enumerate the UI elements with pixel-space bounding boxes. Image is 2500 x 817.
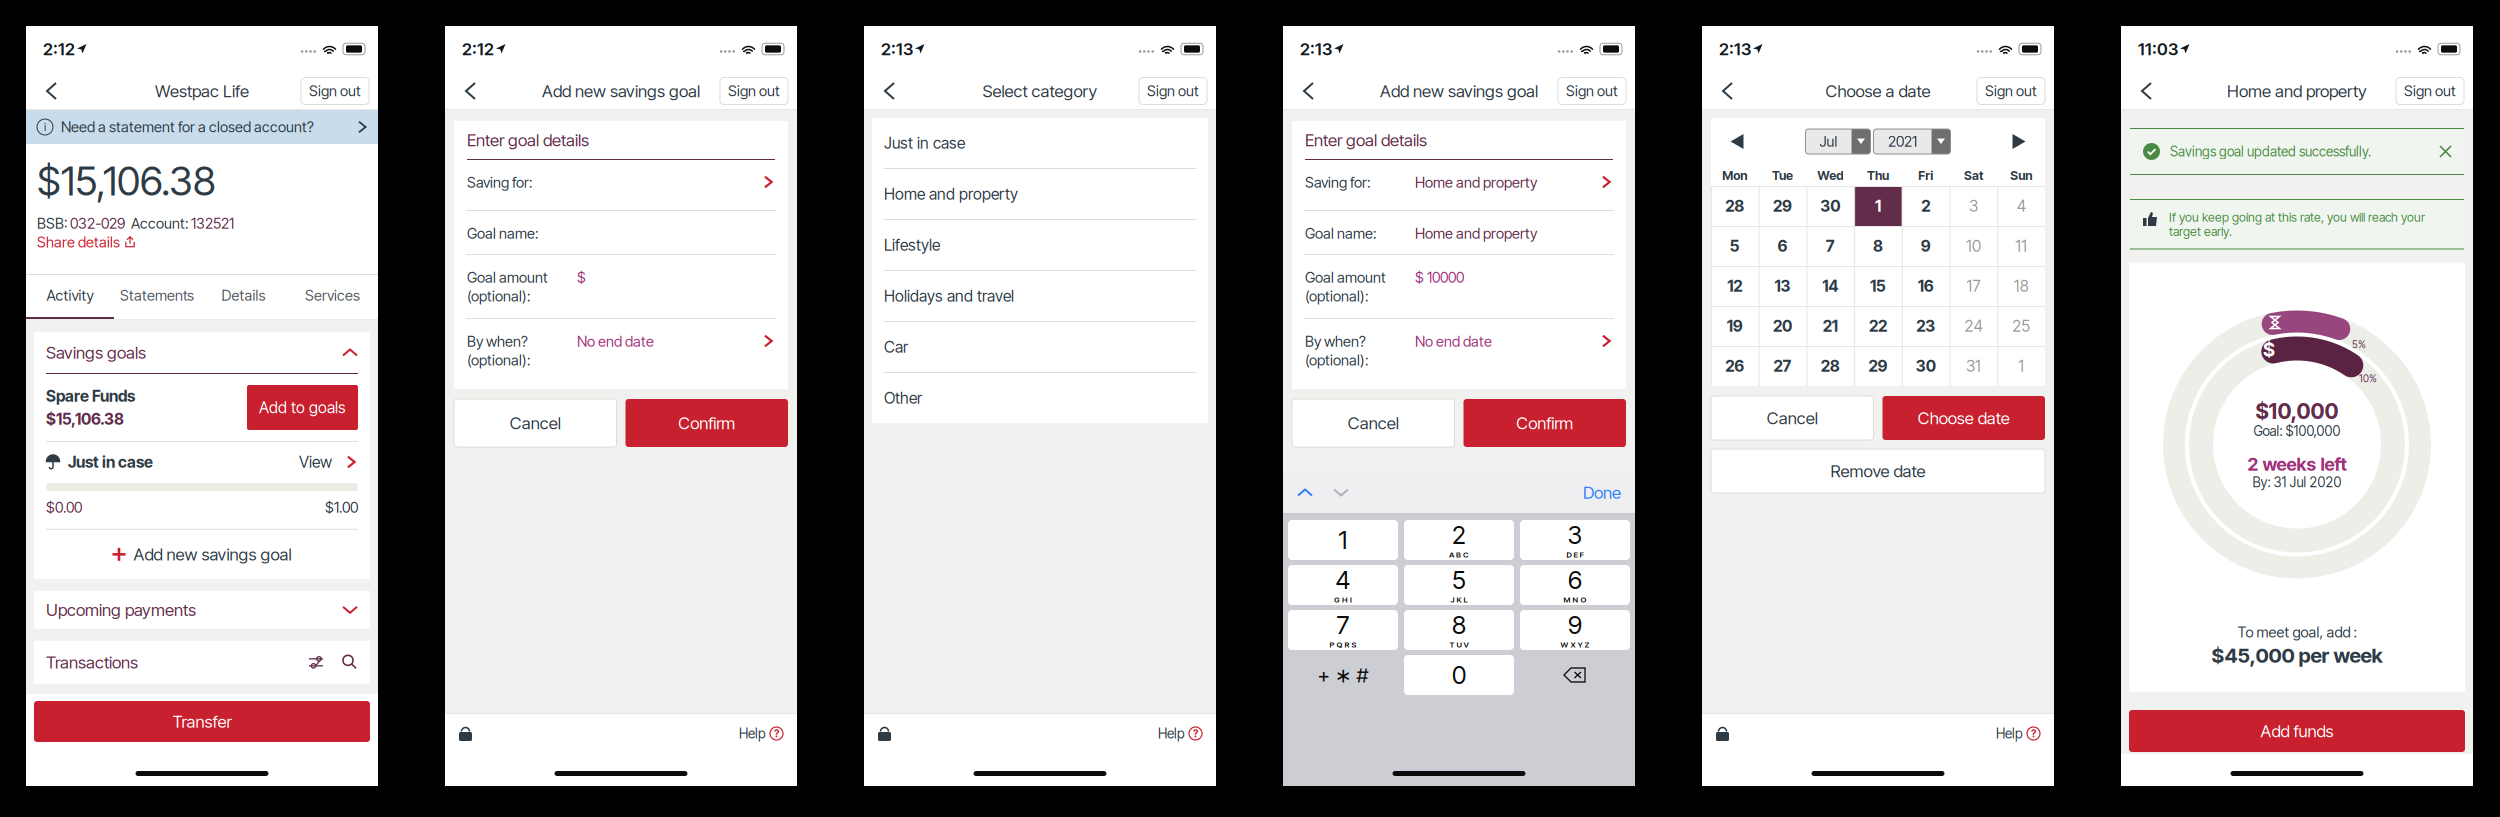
- button[interactable]: 31: [1950, 346, 1997, 386]
- button[interactable]: 6: [1759, 226, 1806, 266]
- button[interactable]: Cancel: [1292, 399, 1454, 447]
- button[interactable]: Saving for:: [1292, 160, 1626, 210]
- button[interactable]: 5: [1404, 565, 1514, 605]
- button[interactable]: Goal amount: [1292, 255, 1626, 318]
- button[interactable]: Confirm: [625, 399, 788, 447]
- button[interactable]: 1: [1997, 346, 2045, 386]
- button[interactable]: Sign out: [1558, 77, 1626, 104]
- button[interactable]: Savings goals: [34, 332, 370, 374]
- button[interactable]: 6: [1520, 565, 1630, 605]
- button[interactable]: 28: [1806, 346, 1854, 386]
- button[interactable]: 1: [1854, 186, 1902, 226]
- button[interactable]: Saving for:: [454, 160, 788, 210]
- button[interactable]: Back: [1292, 72, 1326, 110]
- button[interactable]: 15: [1854, 266, 1902, 306]
- button[interactable]: Filter: [309, 655, 324, 670]
- button[interactable]: Help: [1996, 726, 2040, 741]
- button[interactable]: Just in case: [872, 118, 1208, 168]
- button[interactable]: 8: [1854, 226, 1902, 266]
- button[interactable]: Sign out: [2396, 77, 2464, 104]
- button[interactable]: 9: [1902, 226, 1950, 266]
- button[interactable]: Lifestyle: [872, 220, 1208, 270]
- button[interactable]: Back: [873, 72, 907, 110]
- button[interactable]: 23: [1902, 306, 1950, 346]
- button[interactable]: Goal name:: [454, 211, 788, 254]
- button[interactable]: Cancel: [454, 399, 616, 447]
- button[interactable]: 3: [1520, 520, 1630, 560]
- button[interactable]: Activity: [26, 274, 114, 320]
- button[interactable]: 5: [1711, 226, 1759, 266]
- button[interactable]: Holidays and travel: [872, 271, 1208, 321]
- button[interactable]: 25: [1997, 306, 2045, 346]
- button[interactable]: i: [26, 110, 378, 144]
- button[interactable]: Home and property: [872, 169, 1208, 219]
- button[interactable]: Goal name:: [1292, 211, 1626, 254]
- button[interactable]: 30: [1806, 186, 1854, 226]
- button[interactable]: 10: [1950, 226, 1997, 266]
- button[interactable]: Add new savings goal: [34, 530, 370, 579]
- button[interactable]: Upcoming payments: [34, 591, 370, 629]
- button[interactable]: 17: [1950, 266, 1997, 306]
- button[interactable]: By when?: [454, 319, 788, 389]
- button[interactable]: Next month: [1997, 121, 2041, 161]
- button[interactable]: Sign out: [1139, 77, 1207, 104]
- button[interactable]: Delete: [1520, 655, 1630, 695]
- button[interactable]: Car: [872, 322, 1208, 372]
- button[interactable]: Back: [2130, 72, 2164, 110]
- button[interactable]: 7: [1806, 226, 1854, 266]
- button[interactable]: 24: [1950, 306, 1997, 346]
- button[interactable]: Add to goals: [247, 385, 358, 430]
- button[interactable]: Goal amount: [454, 255, 788, 318]
- button[interactable]: By when?: [1292, 319, 1626, 389]
- button[interactable]: Back: [1711, 72, 1745, 110]
- button[interactable]: Remove date: [1711, 449, 2045, 493]
- button[interactable]: 9: [1520, 610, 1630, 650]
- button[interactable]: 2: [1404, 520, 1514, 560]
- button[interactable]: Just in case: [34, 442, 370, 529]
- button[interactable]: 27: [1759, 346, 1806, 386]
- button[interactable]: Statements: [114, 274, 200, 320]
- button[interactable]: 2021: [1873, 129, 1950, 154]
- button[interactable]: 14: [1806, 266, 1854, 306]
- button[interactable]: 0: [1404, 655, 1514, 695]
- button[interactable]: Dismiss: [2440, 146, 2451, 157]
- button[interactable]: 22: [1854, 306, 1902, 346]
- button[interactable]: + ∗ #: [1288, 655, 1398, 695]
- button[interactable]: Done: [1583, 483, 1621, 502]
- button[interactable]: Help: [739, 726, 783, 741]
- button[interactable]: Confirm: [1463, 399, 1626, 447]
- button[interactable]: 30: [1902, 346, 1950, 386]
- button[interactable]: 19: [1711, 306, 1759, 346]
- button[interactable]: 28: [1711, 186, 1759, 226]
- button[interactable]: Search: [324, 654, 358, 670]
- button[interactable]: 4: [1997, 186, 2045, 226]
- button[interactable]: 20: [1759, 306, 1806, 346]
- button[interactable]: 12: [1711, 266, 1759, 306]
- button[interactable]: Sign out: [301, 77, 369, 104]
- button[interactable]: 26: [1711, 346, 1759, 386]
- button[interactable]: 4: [1288, 565, 1398, 605]
- button[interactable]: Share details: [37, 234, 135, 251]
- button[interactable]: Back: [35, 72, 69, 110]
- button[interactable]: Previous month: [1715, 121, 1759, 161]
- button[interactable]: Choose date: [1882, 396, 2045, 440]
- button[interactable]: 13: [1759, 266, 1806, 306]
- button[interactable]: 1: [1288, 520, 1398, 560]
- button[interactable]: Other: [872, 373, 1208, 423]
- button[interactable]: Details: [200, 274, 287, 320]
- button[interactable]: Help: [1158, 726, 1202, 741]
- button[interactable]: 29: [1854, 346, 1902, 386]
- button[interactable]: Transfer: [34, 701, 370, 742]
- button[interactable]: Next field: [1313, 487, 1349, 497]
- button[interactable]: Back: [454, 72, 488, 110]
- button[interactable]: Services: [287, 274, 378, 320]
- button[interactable]: 7: [1288, 610, 1398, 650]
- button[interactable]: 3: [1950, 186, 1997, 226]
- button[interactable]: 11: [1997, 226, 2045, 266]
- button[interactable]: Jul: [1805, 129, 1870, 154]
- button[interactable]: 29: [1759, 186, 1806, 226]
- button[interactable]: 8: [1404, 610, 1514, 650]
- button[interactable]: Add funds: [2129, 710, 2465, 752]
- button[interactable]: Sign out: [1977, 77, 2045, 104]
- button[interactable]: Previous field: [1297, 487, 1313, 497]
